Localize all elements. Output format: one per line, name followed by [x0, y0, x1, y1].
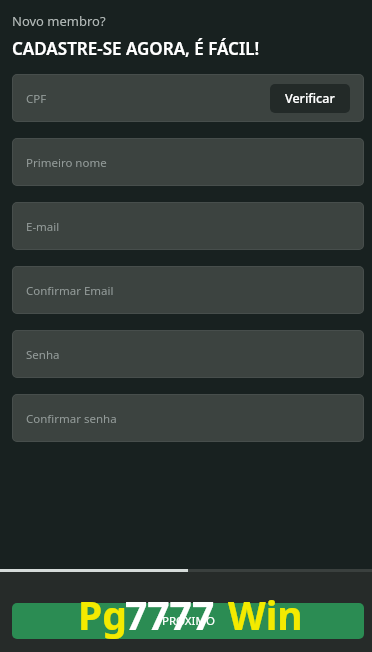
staticText: E-mail — [26, 219, 60, 235]
staticText: Confirmar Email — [26, 283, 114, 299]
staticText: Win — [228, 588, 303, 641]
button[interactable]: Confirmar Email — [12, 266, 364, 314]
button[interactable]: Verificar — [270, 84, 350, 113]
button[interactable]: Confirmar senha — [12, 394, 364, 442]
staticText: 7777 — [125, 588, 215, 641]
staticText: CADASTRE-SE AGORA, É FÁCIL! — [12, 37, 260, 60]
staticText: Confirmar senha — [26, 411, 117, 427]
staticText: Novo membro? — [12, 12, 106, 30]
button[interactable]: E-mail — [12, 202, 364, 250]
staticText: PRÓXIMO — [162, 613, 215, 629]
staticText: Primeiro nome — [26, 155, 107, 171]
button[interactable]: Senha — [12, 330, 364, 378]
staticText: Senha — [26, 347, 60, 363]
staticText: CPF — [26, 91, 47, 107]
button[interactable]: PRÓXIMO — [12, 603, 364, 639]
button[interactable]: CPF — [12, 74, 364, 122]
staticText: Verificar — [285, 90, 335, 107]
staticText: Pg — [78, 588, 127, 641]
button[interactable]: Primeiro nome — [12, 138, 364, 186]
